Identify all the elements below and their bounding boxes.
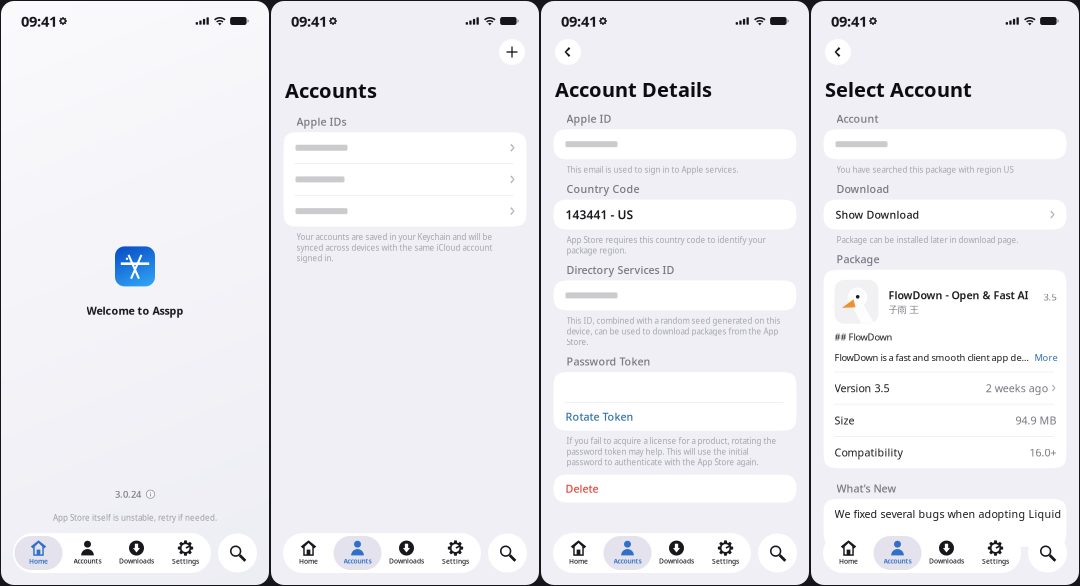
button[interactable]: Version 3.5 [823, 372, 1066, 404]
staticText: ## FlowDown [834, 331, 892, 343]
staticText: If you fail to acquire a license for a p… [566, 436, 776, 468]
button[interactable]: Search [218, 533, 257, 572]
staticText: Home [569, 557, 588, 566]
staticText: Size [834, 413, 854, 427]
staticText: 子雨 王 [888, 304, 918, 316]
button[interactable]: Settings [971, 536, 1019, 570]
staticText: 143441 - US [565, 206, 633, 222]
staticText: 09:41 [831, 11, 867, 31]
staticText: Account [836, 112, 878, 126]
staticText: Show Download [835, 207, 919, 222]
button[interactable] [283, 164, 526, 195]
button[interactable]: Home [554, 536, 602, 570]
staticText: 2 weeks ago [986, 381, 1048, 395]
staticText: Downloads [659, 557, 694, 565]
staticText: 09:41 [21, 11, 57, 31]
staticText: FlowDown - Open & Fast AI [888, 288, 1028, 302]
button[interactable]: Delete [553, 474, 796, 502]
staticText: Accounts [613, 557, 641, 565]
button[interactable]: Rotate Token [553, 403, 796, 431]
staticText: Directory Services ID [566, 263, 674, 277]
button[interactable]: Search [758, 533, 797, 572]
staticText: 09:41 [561, 11, 597, 31]
staticText: Delete [565, 481, 598, 496]
button[interactable]: Back [825, 39, 851, 65]
button[interactable]: Settings [431, 536, 479, 570]
button[interactable]: Search [1028, 533, 1067, 572]
button[interactable]: Settings [701, 536, 749, 570]
staticText: Settings [982, 557, 1009, 566]
staticText: 3.5 [1043, 291, 1056, 303]
staticText: Settings [442, 557, 469, 566]
staticText: Downloads [389, 557, 424, 565]
button[interactable]: Home [14, 536, 62, 570]
button[interactable]: Home [824, 536, 872, 570]
staticText: Settings [172, 557, 199, 566]
staticText: FlowDown is a fast and smooth client app… [834, 351, 1031, 364]
staticText: Home [299, 557, 318, 566]
staticText: We fixed several bugs when adopting Liqu… [834, 507, 1061, 521]
staticText: Home [29, 557, 48, 566]
staticText: More [1034, 351, 1057, 364]
staticText: Download [836, 182, 889, 196]
staticText: 3.0.24 [115, 488, 141, 500]
staticText: App Store requires this country code to … [566, 234, 765, 256]
button[interactable]: Accounts [873, 536, 921, 570]
button[interactable]: Accounts [333, 536, 381, 570]
staticText: Accounts [883, 557, 911, 565]
staticText: Package can be installed later in downlo… [836, 234, 1018, 245]
button[interactable] [283, 196, 526, 227]
button[interactable]: Back [555, 39, 581, 65]
staticText: What's New [836, 481, 896, 495]
staticText: Your accounts are saved in your Keychain… [296, 232, 492, 263]
button[interactable]: Downloads [652, 536, 700, 570]
staticText: Downloads [929, 557, 964, 565]
staticText: App Store itself is unstable, retry if n… [53, 512, 217, 523]
button[interactable] [283, 132, 526, 163]
staticText: 94.9 MB [1015, 413, 1056, 427]
button[interactable]: Downloads [112, 536, 160, 570]
staticText: Downloads [119, 557, 154, 565]
button[interactable]: Settings [161, 536, 209, 570]
staticText: Pricing [836, 557, 871, 571]
staticText: Welcome to Asspp [86, 303, 183, 318]
staticText: Apple ID [566, 112, 611, 126]
button[interactable]: Accounts [603, 536, 651, 570]
staticText: 16.0+ [1029, 445, 1056, 460]
staticText: Package [836, 252, 879, 266]
staticText: 09:41 [291, 11, 327, 31]
staticText: Version 3.5 [834, 381, 889, 395]
staticText: This email is used to sign in to Apple s… [566, 164, 738, 175]
button[interactable]: Downloads [382, 536, 430, 570]
button[interactable]: Show Download [823, 199, 1066, 229]
button[interactable]: Accounts [63, 536, 111, 570]
staticText: Account Details [555, 76, 712, 103]
staticText: This ID, combined with a random seed gen… [566, 315, 780, 347]
staticText: Select Account [825, 76, 972, 103]
staticText: Password Token [566, 354, 650, 368]
button[interactable]: Home [284, 536, 332, 570]
button[interactable]: Add account [499, 39, 525, 65]
staticText: Accounts [285, 77, 377, 104]
staticText: You have searched this package with regi… [836, 164, 1013, 175]
staticText: Accounts [343, 557, 371, 565]
staticText: Country Code [566, 182, 639, 196]
staticText: Apple IDs [296, 115, 346, 129]
staticText: Settings [712, 557, 739, 566]
staticText: Accounts [73, 557, 101, 565]
button[interactable]: Search [488, 533, 527, 572]
staticText: Home [839, 557, 858, 566]
button[interactable]: Downloads [922, 536, 970, 570]
staticText: Rotate Token [565, 410, 633, 424]
staticText: Compatibility [834, 445, 902, 460]
